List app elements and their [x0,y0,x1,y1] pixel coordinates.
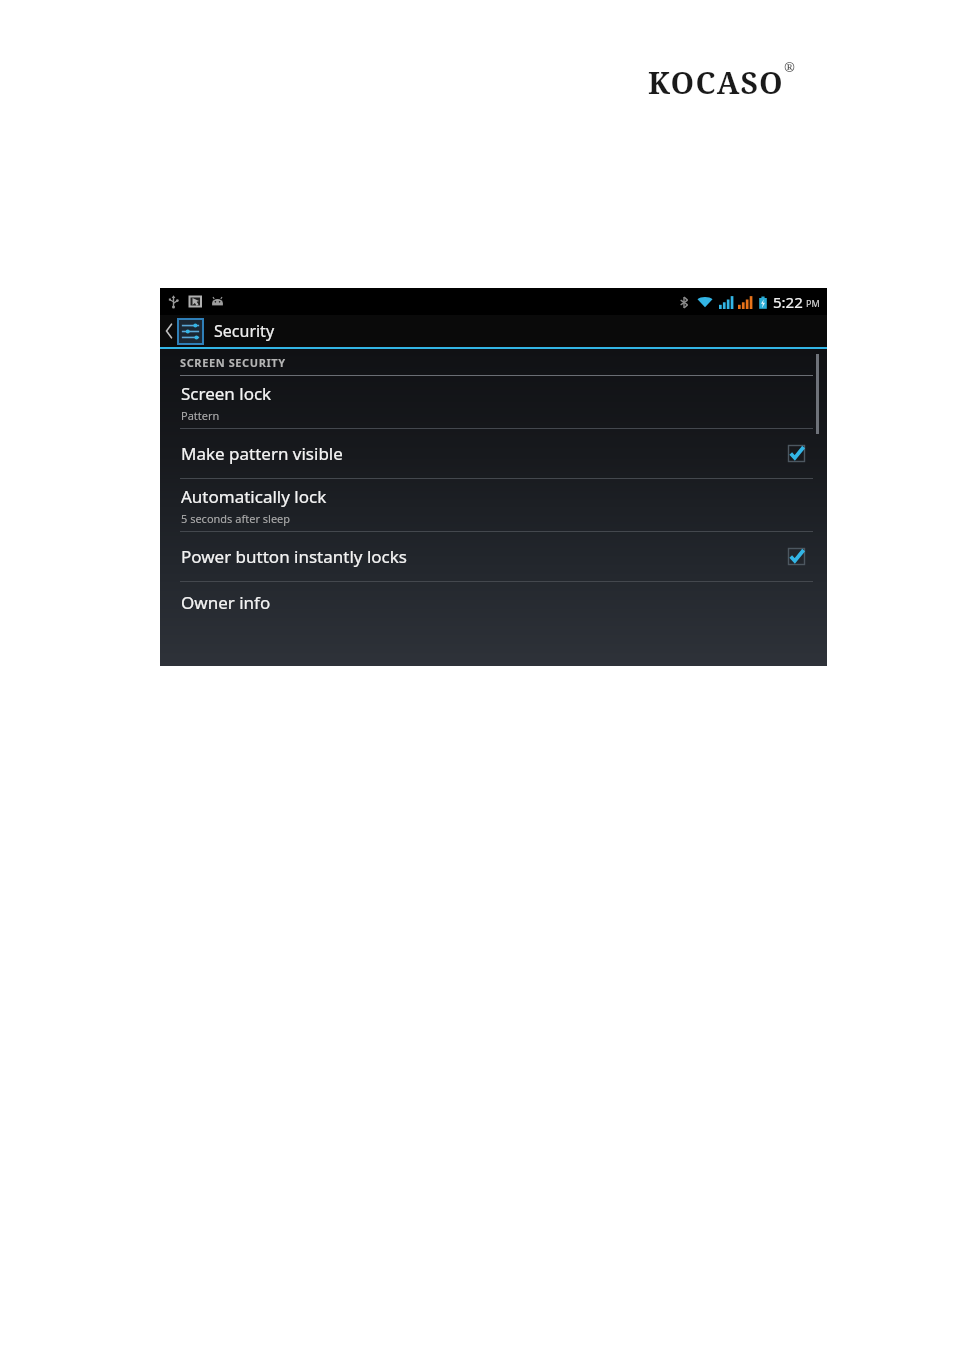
staticText: PM [806,297,820,309]
staticText: Owner info [181,591,271,614]
staticText: 5 seconds after sleep [181,511,291,526]
button[interactable]: Back [160,315,208,347]
staticText: 5:22 [773,292,803,312]
staticText: Make pattern visible [181,442,788,465]
button[interactable]: Owner info [160,582,827,622]
staticText: ® [784,58,795,76]
staticText: KOCASO [648,62,784,103]
button[interactable]: Make pattern visible [160,429,827,478]
staticText: Pattern [181,408,220,423]
staticText: SCREEN SECURITY [180,355,286,370]
staticText: Automatically lock [181,485,327,508]
other: Power button instantly locks checkbox [788,548,805,565]
button[interactable]: Screen lock [160,376,827,428]
staticText: Screen lock [181,382,272,405]
staticText: Security [214,320,275,342]
other: Make pattern visible checkbox [788,445,805,462]
staticText: Power button instantly locks [181,545,788,568]
button[interactable]: Automatically lock [160,479,827,531]
button[interactable]: Power button instantly locks [160,532,827,581]
